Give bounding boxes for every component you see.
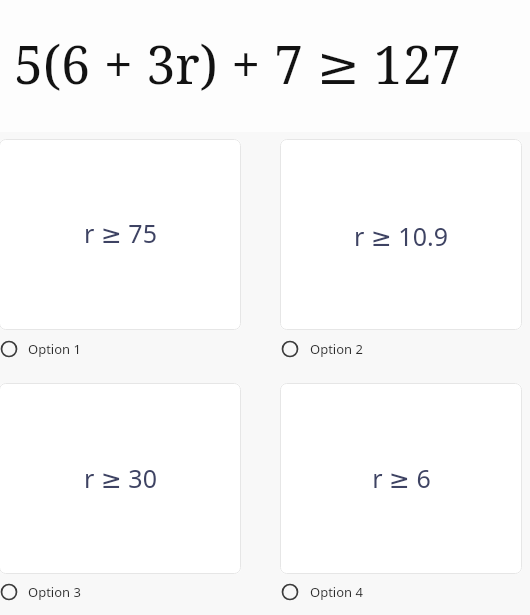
button[interactable]: r ≥ 30 <box>0 383 241 574</box>
staticText: r ≥ 10.9 <box>354 219 448 253</box>
staticText: r ≥ 6 <box>372 461 431 495</box>
other: Option 1 <box>0 335 23 363</box>
staticText: Option 4 <box>310 583 363 601</box>
button[interactable]: Option 1 <box>0 334 114 364</box>
other: Option 3 <box>0 578 23 606</box>
staticText: r ≥ 30 <box>84 461 157 495</box>
button[interactable]: Option 2 <box>276 334 396 364</box>
button[interactable]: r ≥ 75 <box>0 139 241 330</box>
button[interactable]: Option 3 <box>0 577 114 607</box>
staticText: r ≥ 75 <box>84 216 157 250</box>
other: Option 4 <box>276 578 304 606</box>
other: Option 2 <box>276 335 304 363</box>
button[interactable]: r ≥ 6 <box>280 383 522 574</box>
staticText: Option 2 <box>310 340 363 358</box>
staticText: 5(6 + 3r) + 7 ≥ 127 <box>14 28 461 99</box>
button[interactable]: r ≥ 10.9 <box>280 139 522 330</box>
button[interactable]: Option 4 <box>276 577 396 607</box>
staticText: Option 1 <box>28 340 81 358</box>
staticText: Option 3 <box>28 583 81 601</box>
